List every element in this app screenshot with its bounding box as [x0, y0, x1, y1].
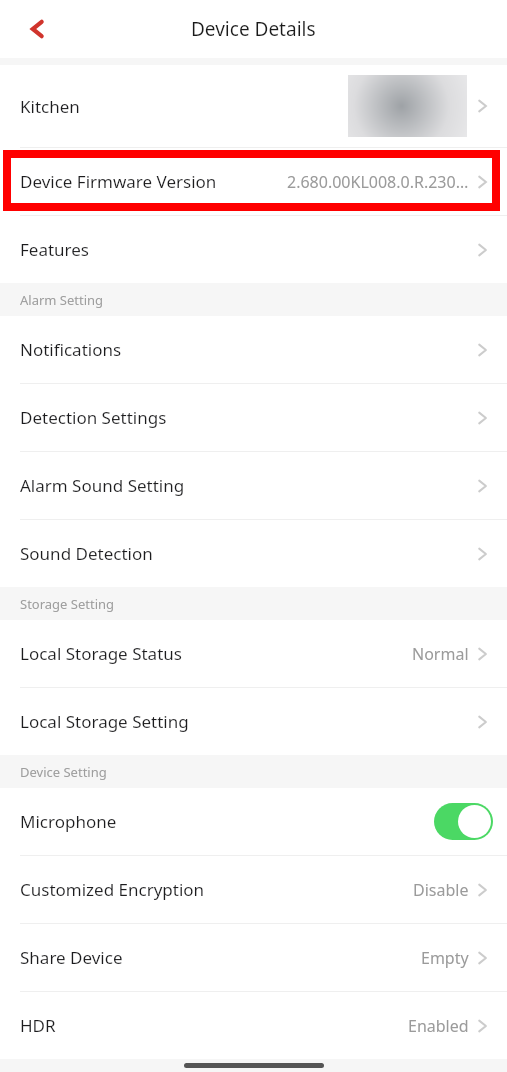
staticText: Sound Detection — [20, 542, 153, 565]
staticText: Share Device — [20, 946, 123, 969]
staticText: Alarm Sound Setting — [20, 474, 185, 497]
staticText: Local Storage Setting — [20, 710, 189, 733]
staticText: Empty — [421, 947, 469, 969]
staticText: Normal — [412, 643, 469, 665]
staticText: Microphone — [20, 810, 117, 833]
staticText: Kitchen — [20, 95, 80, 118]
button[interactable]: Microphone toggle — [434, 803, 493, 840]
button[interactable]: Device Firmware Version — [0, 148, 507, 215]
staticText: Features — [20, 238, 90, 261]
button[interactable]: Local Storage Setting — [0, 688, 507, 755]
button[interactable]: Notifications — [0, 316, 507, 383]
staticText: HDR — [20, 1014, 56, 1037]
staticText: Device Firmware Version — [20, 170, 217, 193]
button[interactable]: Alarm Sound Setting — [0, 452, 507, 519]
button[interactable]: Kitchen — [0, 65, 507, 147]
staticText: Storage Setting — [20, 595, 115, 613]
staticText: Enabled — [408, 1015, 469, 1037]
button[interactable]: Features — [0, 216, 507, 283]
staticText: 2.680.00KL008.0.R.230… — [287, 171, 469, 193]
button[interactable]: HDR — [0, 992, 507, 1059]
button[interactable]: Back — [14, 7, 58, 51]
button[interactable]: Microphone — [0, 788, 507, 855]
button[interactable]: Share Device — [0, 924, 507, 991]
button[interactable]: Sound Detection — [0, 520, 507, 587]
staticText: Alarm Setting — [20, 291, 104, 309]
staticText: Customized Encryption — [20, 878, 205, 901]
button[interactable]: Customized Encryption — [0, 856, 507, 923]
staticText: Disable — [413, 879, 469, 901]
staticText: Notifications — [20, 338, 122, 361]
staticText: Device Setting — [20, 763, 107, 781]
button[interactable]: Detection Settings — [0, 384, 507, 451]
staticText: Device Details — [191, 16, 316, 42]
staticText: Local Storage Status — [20, 642, 182, 665]
staticText: Detection Settings — [20, 406, 167, 429]
button[interactable]: Local Storage Status — [0, 620, 507, 687]
